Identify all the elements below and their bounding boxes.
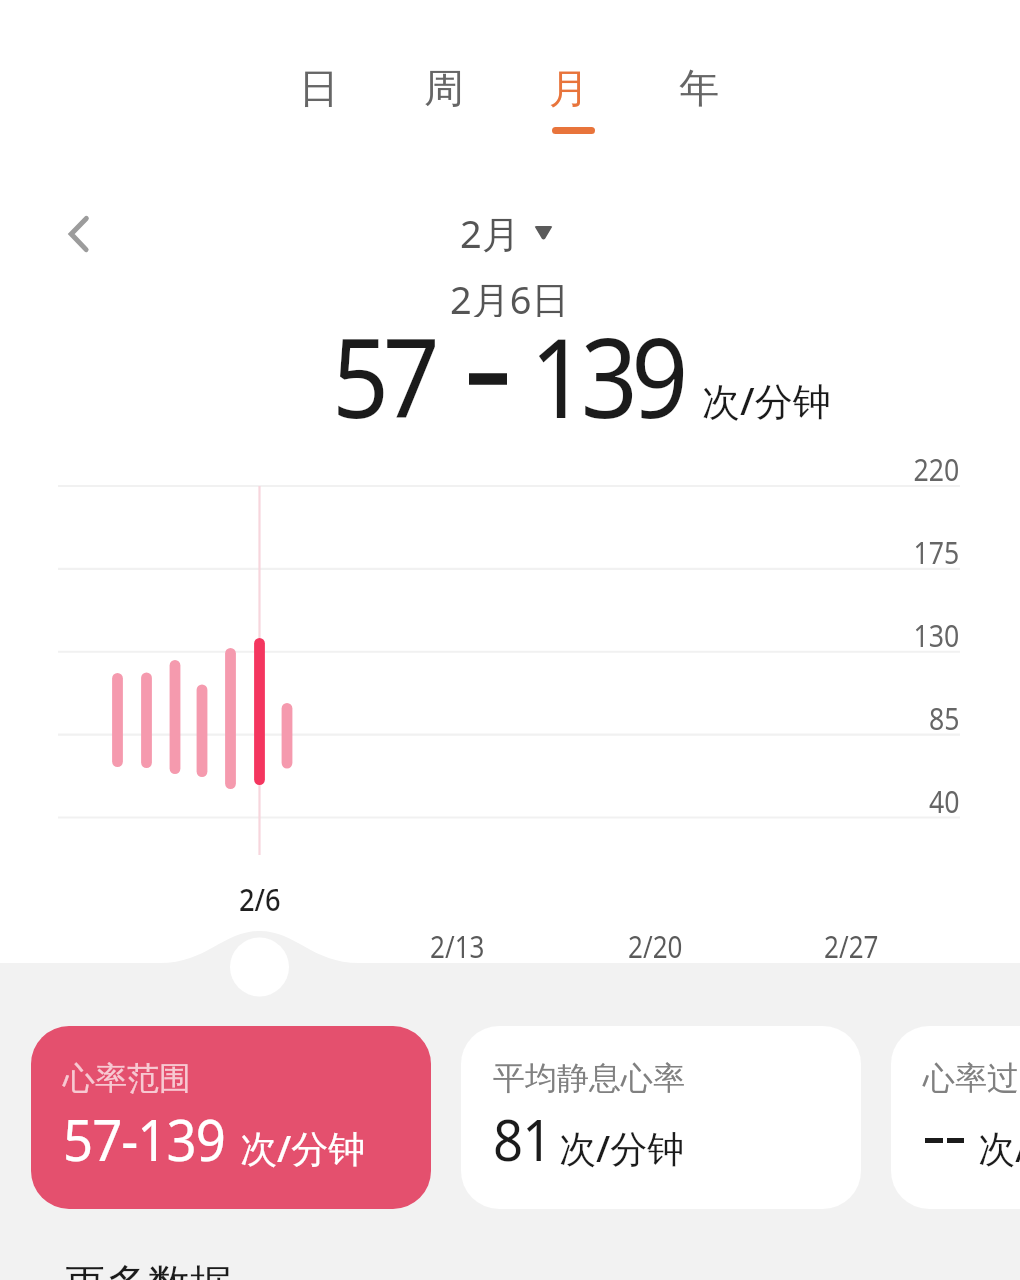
staticText: 57 xyxy=(332,301,434,449)
button[interactable]: Back xyxy=(40,198,112,270)
staticText: 2/13 xyxy=(430,925,485,963)
staticText: 81 xyxy=(493,1101,552,1177)
staticText: 次/分钟 xyxy=(559,1122,685,1173)
staticText: 年 xyxy=(679,63,719,113)
staticText: 2月 xyxy=(460,207,520,259)
staticText: 175 xyxy=(914,531,960,567)
staticText: 2/6 xyxy=(239,878,281,916)
staticText: 85 xyxy=(929,697,960,733)
button[interactable]: 2月 xyxy=(460,206,553,260)
button[interactable]: 年 xyxy=(647,46,751,146)
staticText: 月 xyxy=(549,63,589,113)
staticText: 2月6日 xyxy=(450,273,570,317)
button[interactable]: 更多数据 xyxy=(64,1259,232,1280)
button[interactable]: 周 xyxy=(392,46,496,146)
staticText: 平均静息心率 xyxy=(493,1058,685,1098)
staticText: 220 xyxy=(914,448,960,484)
staticText: 2/20 xyxy=(628,925,683,963)
staticText: 57-139 xyxy=(63,1101,226,1177)
button[interactable]: 月 xyxy=(517,46,621,146)
staticText: 日 xyxy=(299,63,339,113)
button[interactable]: 日 xyxy=(267,46,371,146)
staticText: 心率范围 xyxy=(63,1058,191,1098)
staticText: 40 xyxy=(929,780,960,816)
staticText: 次/分钟 xyxy=(240,1122,366,1173)
staticText: 次/分钟 xyxy=(702,374,831,426)
button[interactable]: 平均静息心率 xyxy=(461,1026,861,1209)
button[interactable]: 心率范围 xyxy=(31,1026,431,1209)
staticText: 139 xyxy=(530,301,683,449)
button[interactable]: 心率过高 xyxy=(891,1026,1020,1209)
staticText: 周 xyxy=(424,63,464,113)
staticText: 2/27 xyxy=(824,925,879,963)
staticText: 次/分钟 xyxy=(978,1122,1020,1173)
staticText: 心率过高 xyxy=(923,1058,1020,1098)
staticText: 130 xyxy=(914,614,960,650)
staticText: 更多数据 xyxy=(64,1259,232,1280)
